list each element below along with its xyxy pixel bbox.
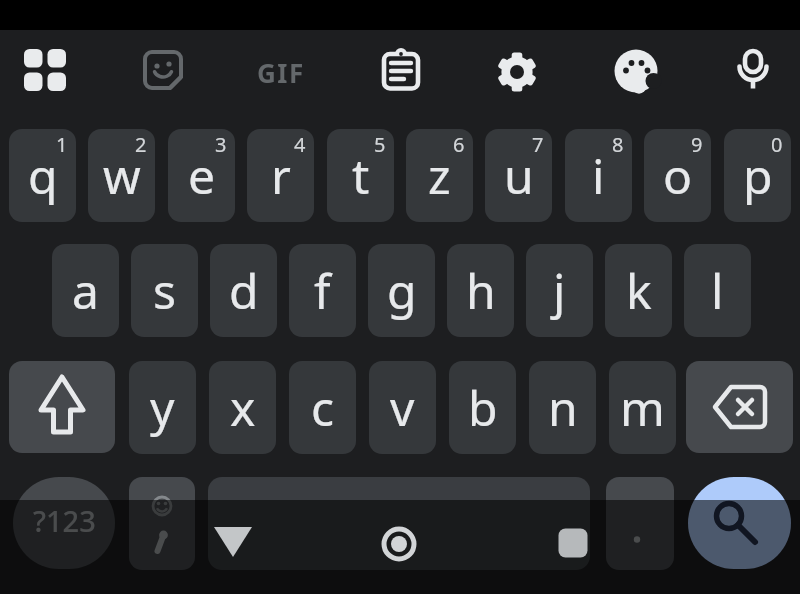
- button[interactable]: h: [447, 244, 514, 337]
- button[interactable]: x: [209, 361, 276, 454]
- staticText: f: [314, 258, 331, 323]
- button[interactable]: d: [210, 244, 277, 337]
- staticText: 4: [294, 131, 306, 158]
- button[interactable]: [373, 43, 429, 99]
- staticText: 7: [532, 131, 544, 158]
- staticText: o: [663, 143, 693, 208]
- button[interactable]: j: [526, 244, 593, 337]
- staticText: k: [626, 258, 652, 323]
- staticText: z: [428, 143, 451, 208]
- staticText: p: [743, 143, 773, 208]
- staticText: l: [711, 258, 724, 323]
- staticText: 3: [215, 131, 227, 158]
- button[interactable]: ?123: [13, 477, 115, 569]
- staticText: h: [466, 258, 496, 323]
- button[interactable]: [725, 41, 781, 97]
- staticText: b: [468, 375, 498, 440]
- staticText: g: [387, 258, 417, 323]
- button[interactable]: i: [565, 129, 632, 222]
- staticText: 8: [612, 131, 624, 158]
- button[interactable]: v: [369, 361, 436, 454]
- staticText: 0: [771, 131, 783, 158]
- button[interactable]: b: [449, 361, 516, 454]
- staticText: x: [230, 375, 256, 440]
- staticText: 2: [135, 131, 147, 158]
- staticText: r: [271, 143, 291, 208]
- staticText: y: [150, 375, 175, 440]
- button[interactable]: w: [88, 129, 155, 222]
- button[interactable]: q: [9, 129, 76, 222]
- button[interactable]: [135, 42, 191, 98]
- button[interactable]: o: [644, 129, 711, 222]
- staticText: a: [72, 258, 99, 323]
- button[interactable]: n: [529, 361, 596, 454]
- button[interactable]: [608, 43, 664, 99]
- button[interactable]: [209, 518, 257, 566]
- staticText: 6: [453, 131, 465, 158]
- staticText: d: [229, 258, 259, 323]
- button[interactable]: r: [247, 129, 314, 222]
- button[interactable]: [489, 44, 545, 100]
- staticText: GIF: [257, 55, 305, 90]
- button[interactable]: [606, 477, 674, 570]
- button[interactable]: GIF: [256, 52, 306, 92]
- button[interactable]: e: [168, 129, 235, 222]
- button[interactable]: l: [684, 244, 751, 337]
- button[interactable]: t: [327, 129, 394, 222]
- staticText: c: [311, 375, 335, 440]
- staticText: 5: [374, 131, 386, 158]
- staticText: s: [153, 258, 176, 323]
- button[interactable]: a: [52, 244, 119, 337]
- staticText: m: [620, 375, 665, 440]
- staticText: w: [103, 143, 141, 208]
- button[interactable]: f: [289, 244, 356, 337]
- button[interactable]: [17, 42, 73, 98]
- button[interactable]: [549, 519, 597, 567]
- staticText: e: [188, 143, 216, 208]
- button[interactable]: [9, 361, 115, 453]
- staticText: q: [28, 143, 58, 208]
- button[interactable]: [686, 361, 793, 453]
- staticText: ?123: [33, 501, 96, 540]
- button[interactable]: c: [289, 361, 356, 454]
- button[interactable]: s: [131, 244, 198, 337]
- staticText: n: [548, 375, 578, 440]
- button[interactable]: p: [724, 129, 791, 222]
- staticText: 9: [691, 131, 703, 158]
- button[interactable]: [129, 477, 195, 570]
- button[interactable]: y: [129, 361, 196, 454]
- button[interactable]: g: [368, 244, 435, 337]
- staticText: j: [553, 258, 566, 323]
- button[interactable]: u: [485, 129, 552, 222]
- staticText: v: [390, 375, 415, 440]
- staticText: 1: [56, 131, 68, 158]
- button[interactable]: z: [406, 129, 473, 222]
- staticText: u: [504, 143, 534, 208]
- staticText: i: [592, 143, 605, 208]
- button[interactable]: m: [609, 361, 676, 454]
- button[interactable]: [375, 520, 423, 568]
- staticText: t: [352, 143, 370, 208]
- button[interactable]: [208, 477, 590, 570]
- button[interactable]: [688, 477, 791, 569]
- button[interactable]: k: [605, 244, 672, 337]
